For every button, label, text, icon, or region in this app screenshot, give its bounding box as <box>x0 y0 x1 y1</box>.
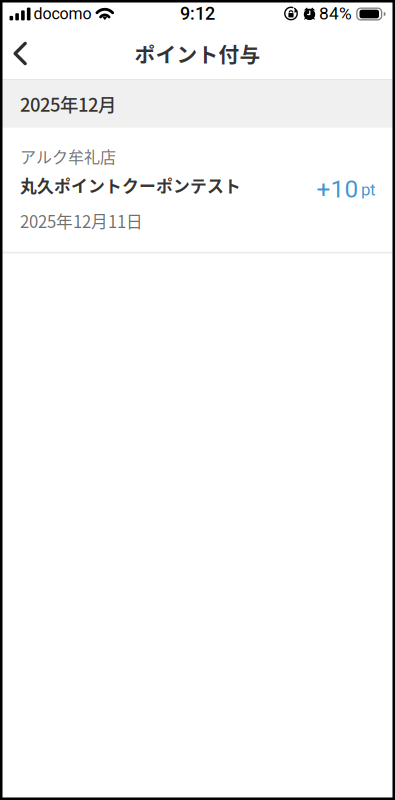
staticText: +10 <box>316 175 358 204</box>
button[interactable]: 戻る <box>0 29 40 77</box>
staticText: pt <box>361 180 375 200</box>
staticText: 84% <box>319 3 352 24</box>
staticText: 9:12 <box>180 3 215 24</box>
staticText: 2025年12月 <box>20 90 116 117</box>
staticText: 2025年12月11日 <box>20 209 143 233</box>
staticText: アルク牟礼店 <box>20 145 116 168</box>
staticText: ポイント付与 <box>134 38 260 68</box>
button[interactable]: アルク牟礼店 <box>0 128 395 252</box>
staticText: 丸久ポイントクーポンテスト <box>20 173 241 197</box>
staticText: docomo <box>33 4 91 23</box>
